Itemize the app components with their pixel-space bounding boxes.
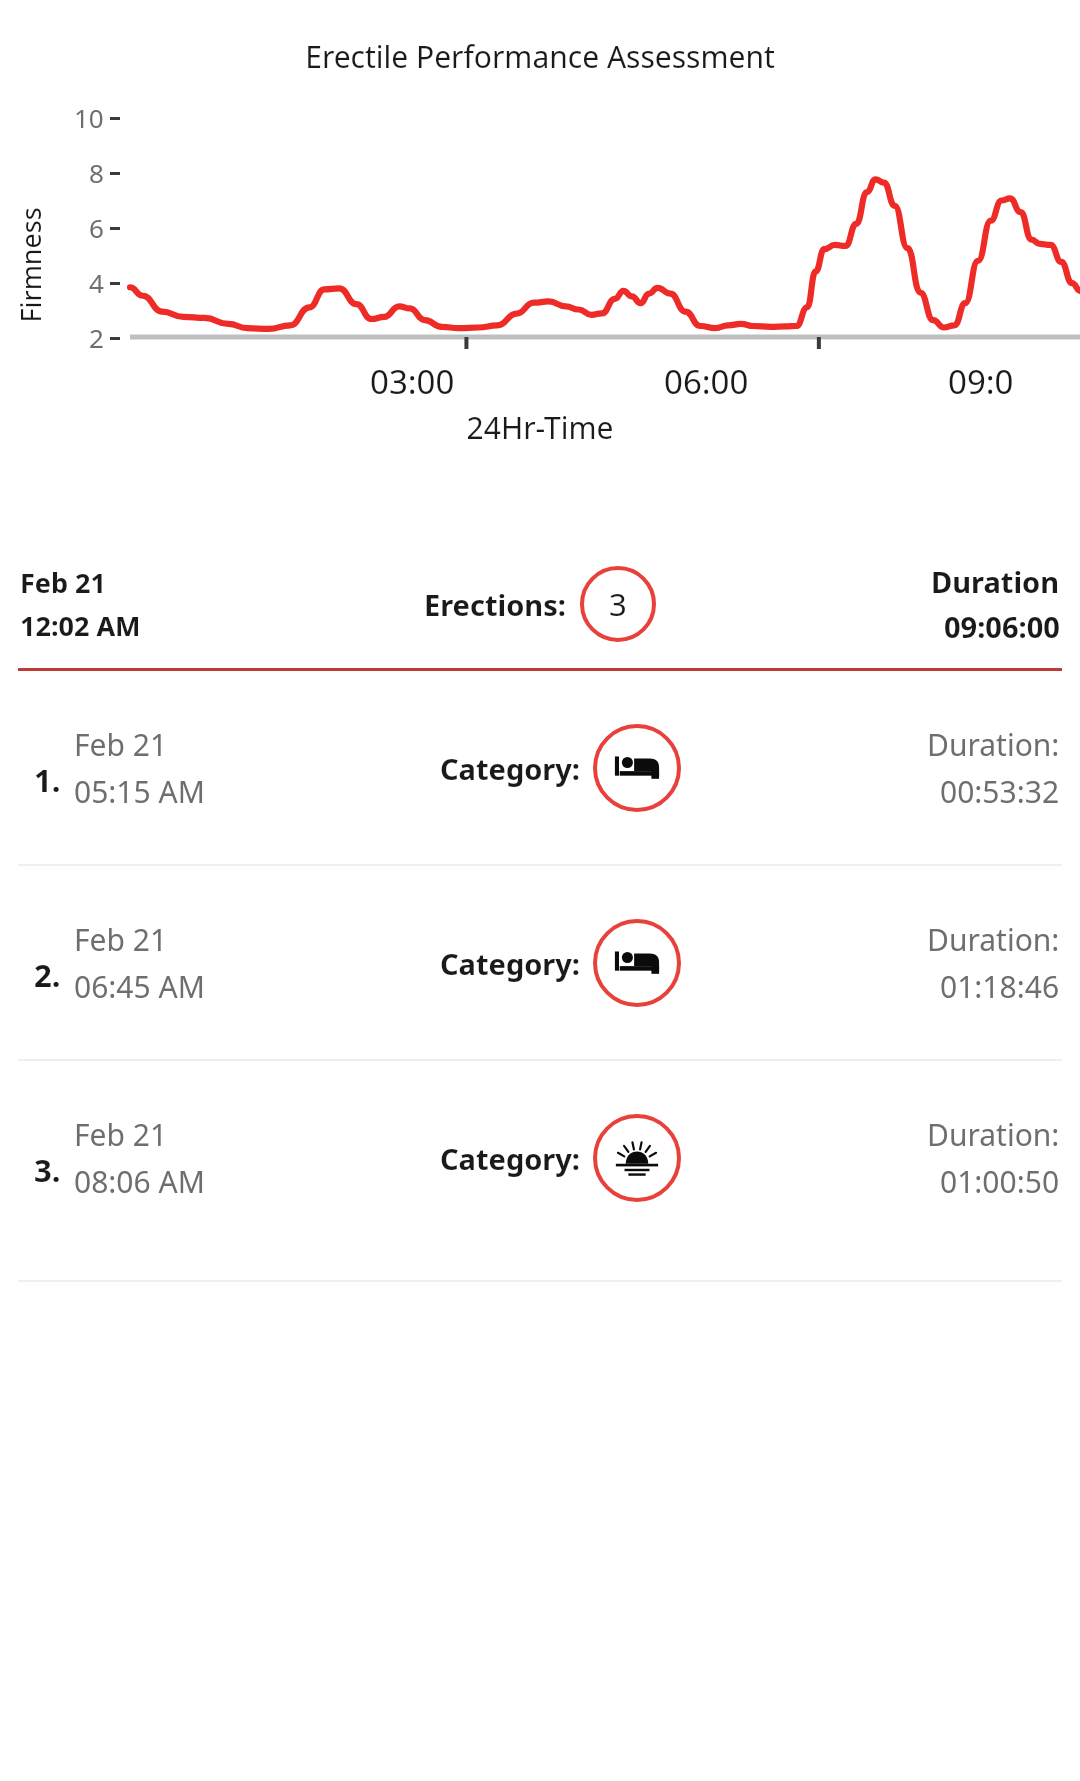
staticText: 03:00 (370, 359, 455, 404)
button[interactable]: 3. (0, 1061, 1080, 1254)
staticText: Erections: (424, 585, 566, 624)
staticText: 12:02 AM (20, 607, 141, 644)
staticText: 10 (74, 100, 104, 135)
staticText: 2 (89, 320, 104, 355)
staticText: 00:53:32 (940, 771, 1060, 812)
staticText: Feb 21 (74, 724, 168, 765)
staticText: Feb 21 (20, 564, 106, 601)
staticText: 3. (34, 1149, 61, 1191)
staticText: 01:00:50 (940, 1161, 1060, 1202)
staticText: 2. (34, 954, 61, 996)
staticText: 06:00 (664, 359, 749, 404)
staticText: 01:18:46 (940, 966, 1060, 1007)
button[interactable]: Sleep category (593, 724, 681, 812)
staticText: Feb 21 (74, 1114, 168, 1155)
staticText: Erectile Performance Assessment (0, 36, 1080, 77)
staticText: Firmness (11, 206, 48, 322)
staticText: 1. (34, 759, 61, 801)
staticText: Duration: (927, 1114, 1060, 1155)
staticText: Duration (931, 562, 1060, 601)
staticText: 09:0 (948, 359, 1014, 404)
button[interactable]: Sleep category (593, 919, 681, 1007)
button[interactable]: Feb 21 (0, 562, 1080, 646)
staticText: Duration: (927, 724, 1060, 765)
button[interactable]: 1. (0, 671, 1080, 864)
staticText: Feb 21 (74, 919, 168, 960)
staticText: 6 (89, 210, 104, 245)
staticText: 05:15 AM (74, 771, 205, 812)
staticText: 3 (609, 583, 627, 625)
staticText: 24Hr-Time (0, 407, 1080, 448)
staticText: Category: (440, 749, 581, 788)
staticText: Category: (440, 1139, 581, 1178)
staticText: Category: (440, 944, 581, 983)
staticText: Duration: (927, 919, 1060, 960)
staticText: 4 (89, 265, 104, 300)
staticText: 06:45 AM (74, 966, 205, 1007)
staticText: 08:06 AM (74, 1161, 205, 1202)
button[interactable]: Sunrise category (593, 1114, 681, 1202)
button[interactable]: 2. (0, 866, 1080, 1059)
staticText: 8 (89, 155, 104, 190)
staticText: 09:06:00 (944, 607, 1060, 646)
